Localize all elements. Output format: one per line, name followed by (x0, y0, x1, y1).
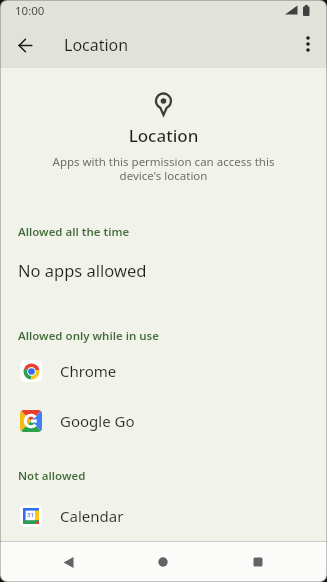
button[interactable] (294, 30, 322, 58)
staticText: Calendar (60, 506, 124, 526)
button[interactable] (143, 542, 183, 582)
button[interactable] (238, 542, 278, 582)
staticText: 10:00 (15, 3, 45, 19)
staticText: Location (0, 124, 327, 147)
button[interactable]: Chrome (0, 355, 327, 405)
button[interactable] (48, 542, 88, 582)
staticText: Google Go (60, 411, 135, 431)
button[interactable] (8, 28, 42, 62)
button[interactable]: 31 (0, 500, 327, 550)
staticText: Chrome (60, 361, 117, 381)
staticText: Apps with this permission can access thi… (0, 154, 327, 183)
staticText: Not allowed (18, 468, 86, 484)
button[interactable]: Google Go (0, 405, 327, 455)
staticText: Allowed only while in use (18, 328, 159, 344)
staticText: No apps allowed (18, 259, 147, 281)
staticText: Location (64, 34, 129, 56)
button[interactable]: No apps allowed (0, 248, 327, 286)
staticText: Allowed all the time (18, 224, 130, 240)
staticText: 31 (27, 511, 34, 519)
